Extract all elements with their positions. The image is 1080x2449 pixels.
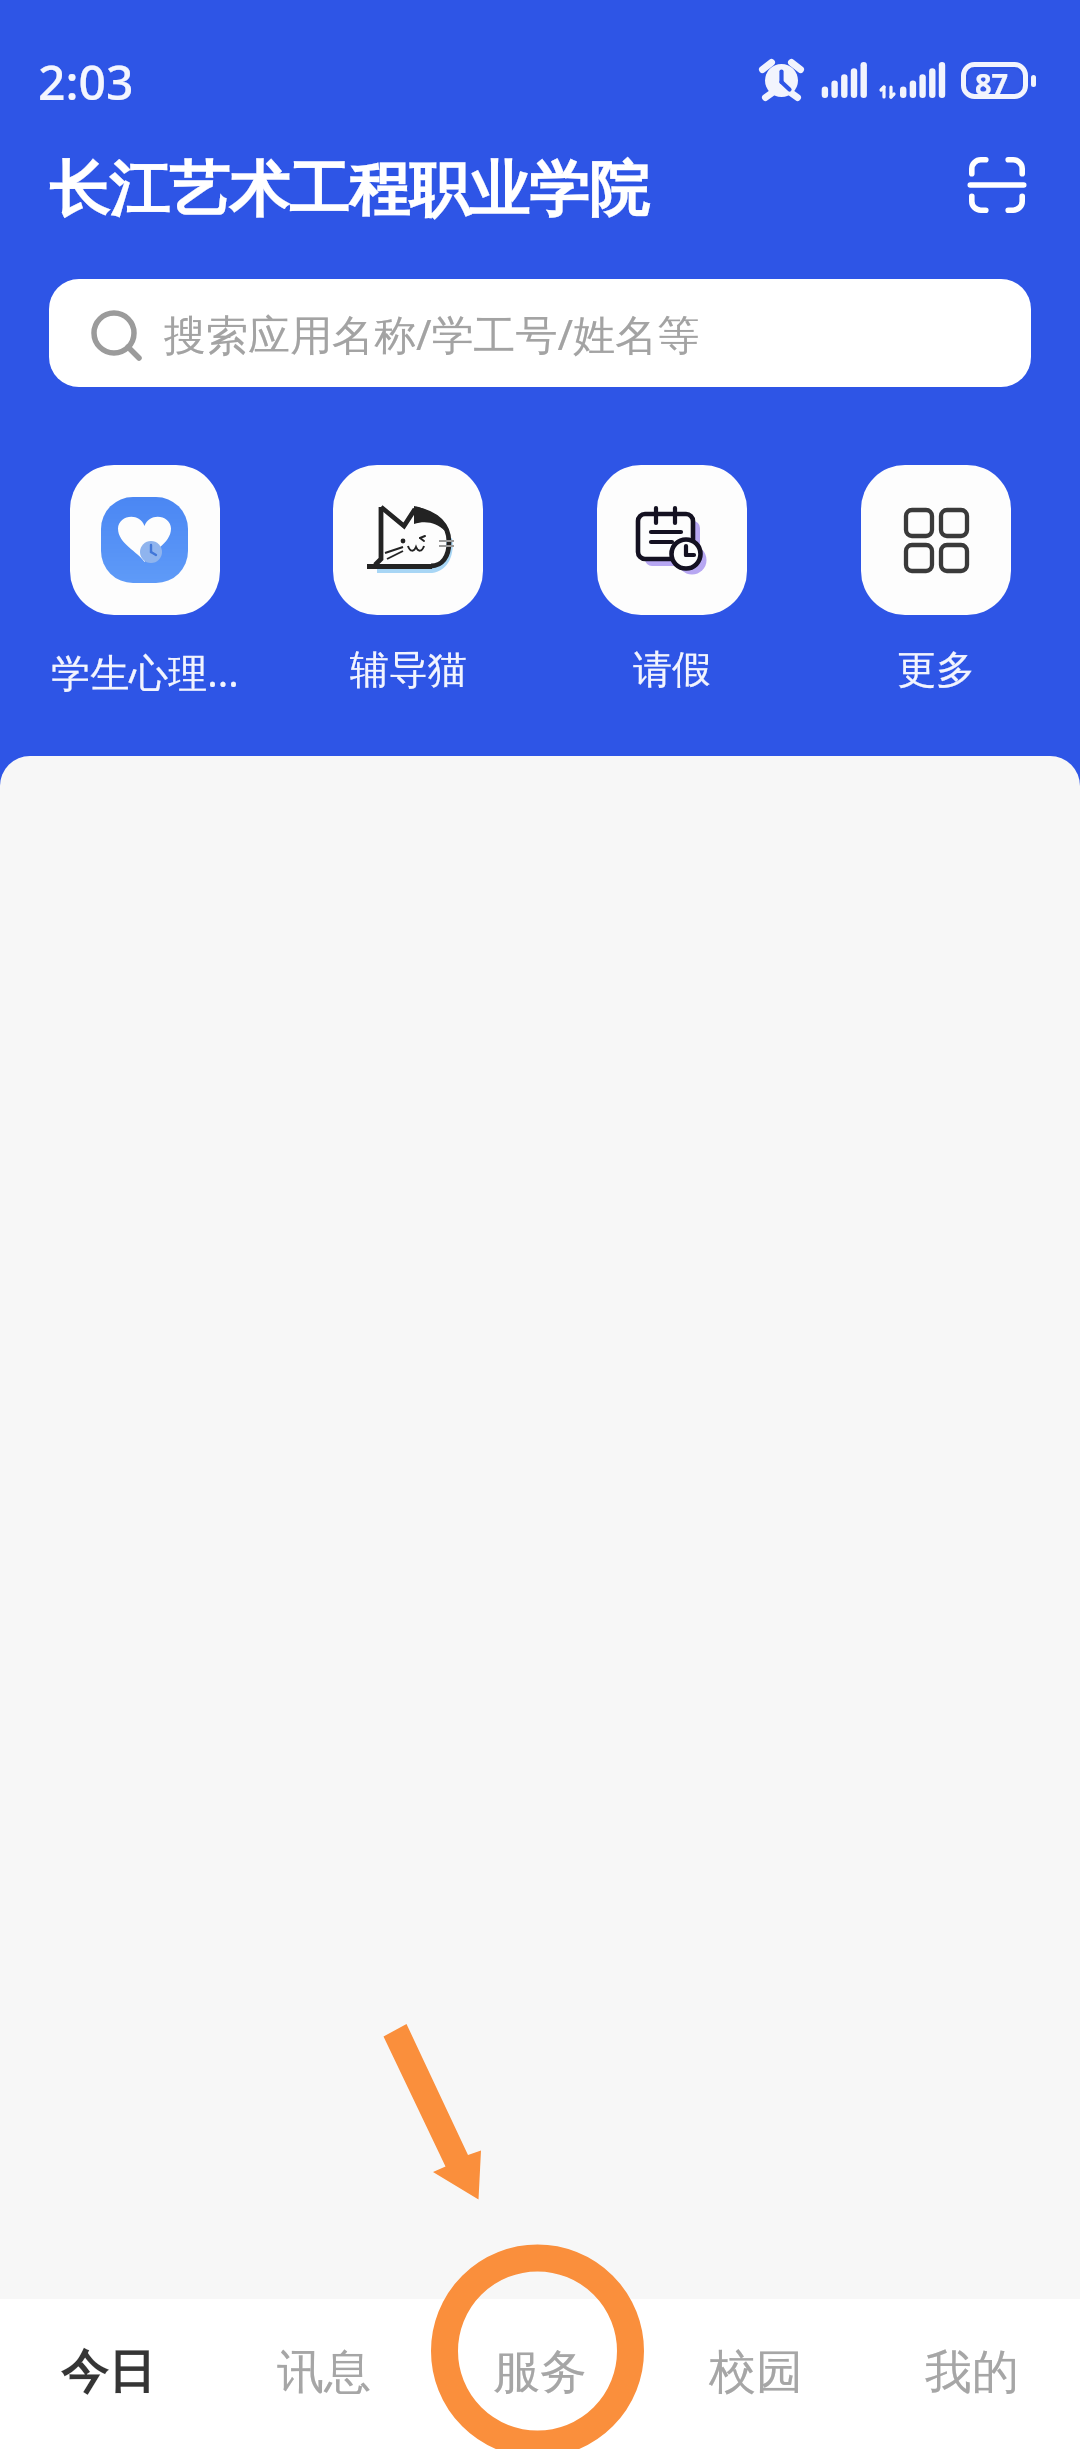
staticText: 学生心理... xyxy=(51,645,239,695)
staticText: 长江艺术工程职业学院 xyxy=(49,152,649,228)
staticText: 更多 xyxy=(897,645,975,694)
staticText: 校园 xyxy=(709,2343,803,2402)
button[interactable]: 服务 xyxy=(432,2297,648,2447)
button[interactable]: 更多 xyxy=(804,465,1068,694)
button[interactable]: 请假 xyxy=(540,465,804,694)
button[interactable]: 扫一扫 xyxy=(949,137,1045,233)
button[interactable]: 辅导猫 xyxy=(276,465,540,694)
staticText: 请假 xyxy=(633,645,711,694)
button[interactable]: 学生心理... xyxy=(13,465,277,695)
button[interactable]: 今日 xyxy=(0,2297,216,2447)
staticText: 今日 xyxy=(61,2343,155,2402)
staticText: 我的 xyxy=(925,2343,1019,2402)
button[interactable]: 讯息 xyxy=(216,2297,432,2447)
staticText: 辅导猫 xyxy=(350,645,467,694)
button[interactable]: 校园 xyxy=(648,2297,864,2447)
staticText: 87 xyxy=(975,64,1009,103)
staticText: 搜索应用名称/学工号/姓名等 xyxy=(164,305,700,362)
button[interactable]: 搜索应用名称/学工号/姓名等 xyxy=(49,279,1031,387)
staticText: 服务 xyxy=(493,2343,587,2402)
button[interactable]: 我的 xyxy=(864,2297,1080,2447)
staticText: 讯息 xyxy=(277,2343,371,2402)
staticText: 2:03 xyxy=(38,49,134,114)
